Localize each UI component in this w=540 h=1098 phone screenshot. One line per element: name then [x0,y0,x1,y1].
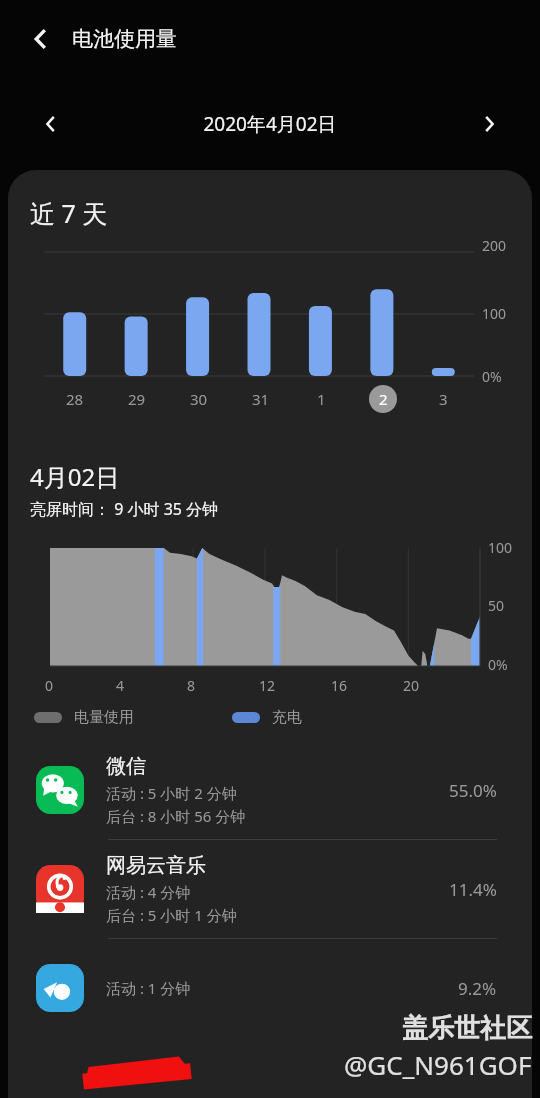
staticText: 活动 : 1 分钟 [106,978,191,998]
staticText: 微信 [106,754,146,779]
staticText: 盖乐世社区 [402,1012,532,1045]
staticText: 31 [252,389,270,409]
staticText: 活动 : 5 小时 2 分钟 [106,783,237,803]
button[interactable]: 活动 : 1 分钟 [8,939,532,1037]
staticText: 后台 : 5 小时 1 分钟 [106,905,237,925]
staticText: 充电 [272,708,302,727]
staticText: 28 [66,389,84,409]
staticText: 100 [482,304,507,323]
staticText: 活动 : 4 分钟 [106,882,191,902]
staticText: 0% [482,367,502,386]
staticText: 200 [482,236,507,255]
staticText: 30 [190,389,208,409]
staticText: 29 [128,389,146,409]
staticText: 16 [331,676,348,695]
staticText: 2020年4月02日 [70,111,470,137]
button[interactable]: Next day [470,105,508,143]
staticText: 55.0% [449,779,497,802]
staticText: 20 [403,676,420,695]
button[interactable]: Back [20,18,62,60]
staticText: 11.4% [449,878,497,901]
staticText: 12 [259,676,276,695]
staticText: 50 [488,596,505,615]
staticText: 4 [116,676,125,695]
staticText: 电量使用 [74,708,134,727]
staticText: 后台 : 8 小时 56 分钟 [106,806,246,826]
staticText: 3 [439,389,448,409]
staticText: 1 [317,389,326,409]
button[interactable]: 网易云音乐 [8,840,532,938]
staticText: 0 [45,676,54,695]
staticText: @GC_N961GOF [344,1047,532,1082]
staticText: 100 [488,538,513,557]
staticText: 2 [379,389,388,409]
button[interactable]: 微信 [8,741,532,839]
staticText: 亮屏时间： 9 小时 35 分钟 [30,498,219,520]
button[interactable]: Previous day [32,105,70,143]
staticText: 8 [187,676,196,695]
staticText: 0% [488,655,508,674]
staticText: 电池使用量 [72,26,177,52]
staticText: 网易云音乐 [106,853,206,878]
staticText: 4月02日 [30,460,120,493]
staticText: 近 7 天 [30,196,108,230]
staticText: 9.2% [458,977,497,1000]
